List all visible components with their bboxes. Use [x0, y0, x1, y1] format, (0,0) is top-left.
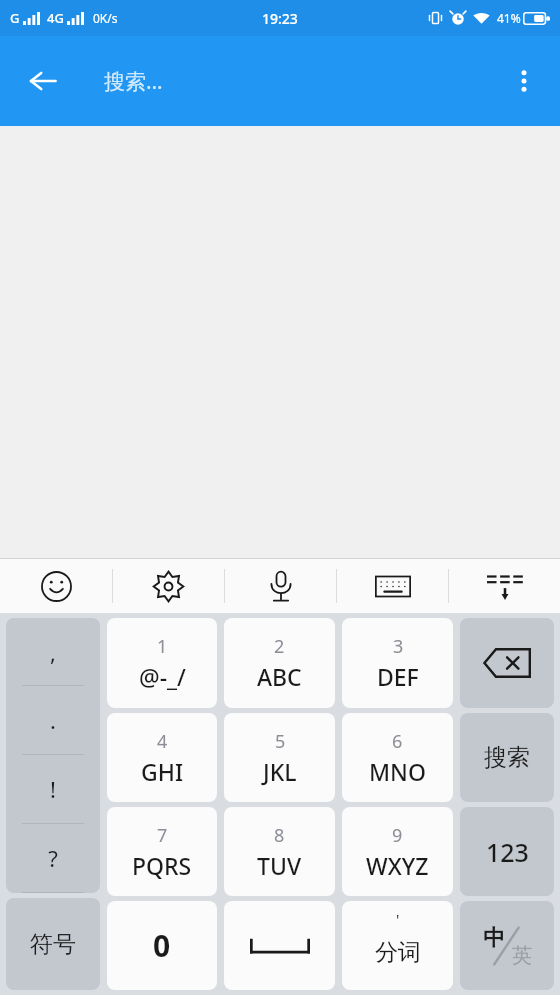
staticText: 分词	[375, 938, 421, 967]
staticText: .	[50, 705, 56, 735]
staticText: 7	[157, 823, 168, 848]
button[interactable]: 3	[342, 618, 453, 708]
staticText: TUV	[257, 850, 302, 881]
staticText: GHI	[141, 756, 184, 787]
staticText: ?	[48, 843, 58, 873]
button[interactable]: Chinese English toggle	[460, 901, 554, 990]
staticText: DEF	[377, 661, 419, 692]
button[interactable]: 0	[107, 901, 217, 990]
button[interactable]: Hide keyboard	[449, 559, 560, 613]
button[interactable]: 4	[107, 713, 217, 802]
staticText: 4	[157, 729, 168, 754]
button[interactable]: 1	[107, 618, 217, 708]
staticText: '	[396, 909, 400, 929]
button[interactable]: '	[342, 901, 453, 990]
button[interactable]: 2	[224, 618, 335, 708]
staticText: WXYZ	[366, 850, 429, 881]
staticText: 英	[512, 943, 532, 968]
staticText: 搜索…	[104, 67, 163, 96]
staticText: 123	[486, 835, 529, 869]
staticText: 2	[274, 634, 285, 659]
button[interactable]: 符号	[6, 898, 100, 990]
button[interactable]: 搜索…	[104, 52, 490, 110]
staticText: 4G	[47, 9, 64, 27]
button[interactable]: More options	[496, 53, 552, 109]
staticText: 符号	[30, 930, 76, 959]
button[interactable]: 9	[342, 807, 453, 896]
staticText: 搜索	[484, 743, 530, 772]
staticText: 1	[157, 634, 168, 659]
button[interactable]: Voice input	[225, 559, 336, 613]
button[interactable]: ,	[6, 618, 100, 893]
staticText: 8	[274, 823, 285, 848]
staticText: !	[50, 774, 56, 804]
staticText: 9	[392, 823, 403, 848]
staticText: ,	[50, 637, 56, 667]
staticText: @-_/	[139, 661, 186, 692]
button[interactable]: 搜索	[460, 713, 554, 802]
button[interactable]: Backspace	[460, 618, 554, 708]
staticText: PQRS	[132, 850, 192, 881]
button[interactable]: Emoji	[0, 559, 112, 613]
staticText: 中	[483, 924, 505, 952]
staticText: JKL	[263, 756, 297, 787]
staticText: 41%	[497, 10, 521, 26]
staticText: 5	[275, 729, 286, 754]
button[interactable]: 6	[342, 713, 453, 802]
button[interactable]: Space	[224, 901, 335, 990]
staticText: ABC	[257, 661, 302, 692]
button[interactable]: 5	[224, 713, 335, 802]
button[interactable]: 8	[224, 807, 335, 896]
staticText: 3	[393, 634, 404, 659]
staticText: 6	[392, 729, 403, 754]
button[interactable]: Settings	[113, 559, 224, 613]
staticText: 19:23	[262, 9, 298, 28]
button[interactable]: Keyboard layout	[337, 559, 448, 613]
button[interactable]: Back	[12, 50, 74, 112]
staticText: 0	[153, 925, 171, 966]
button[interactable]: 7	[107, 807, 217, 896]
staticText: MNO	[369, 756, 426, 787]
staticText: G	[10, 9, 20, 27]
staticText: 0K/s	[93, 10, 118, 26]
button[interactable]: 123	[460, 807, 554, 896]
